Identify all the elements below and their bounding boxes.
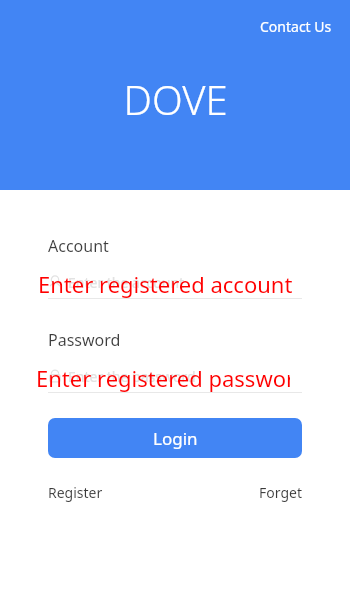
staticText: DOVE <box>123 72 228 126</box>
staticText: Login <box>153 427 198 450</box>
staticText: Enter the account <box>68 273 185 292</box>
other: Account <box>48 275 62 289</box>
button[interactable]: Account <box>48 269 302 299</box>
staticText: Contact Us <box>260 17 332 36</box>
staticText: Enter registered account <box>38 269 292 299</box>
button[interactable]: Login <box>48 418 302 458</box>
other: Password <box>48 369 62 383</box>
staticText: Forget <box>259 483 302 502</box>
staticText: Account <box>48 235 109 257</box>
button[interactable]: Forget <box>259 481 302 504</box>
staticText: Register <box>48 483 103 502</box>
button[interactable]: Contact Us <box>256 14 336 39</box>
button[interactable]: Password <box>48 363 302 393</box>
staticText: Enter registered password <box>36 363 290 393</box>
button[interactable]: Register <box>48 481 103 504</box>
staticText: Enter the password <box>68 367 196 386</box>
staticText: Password <box>48 329 121 351</box>
